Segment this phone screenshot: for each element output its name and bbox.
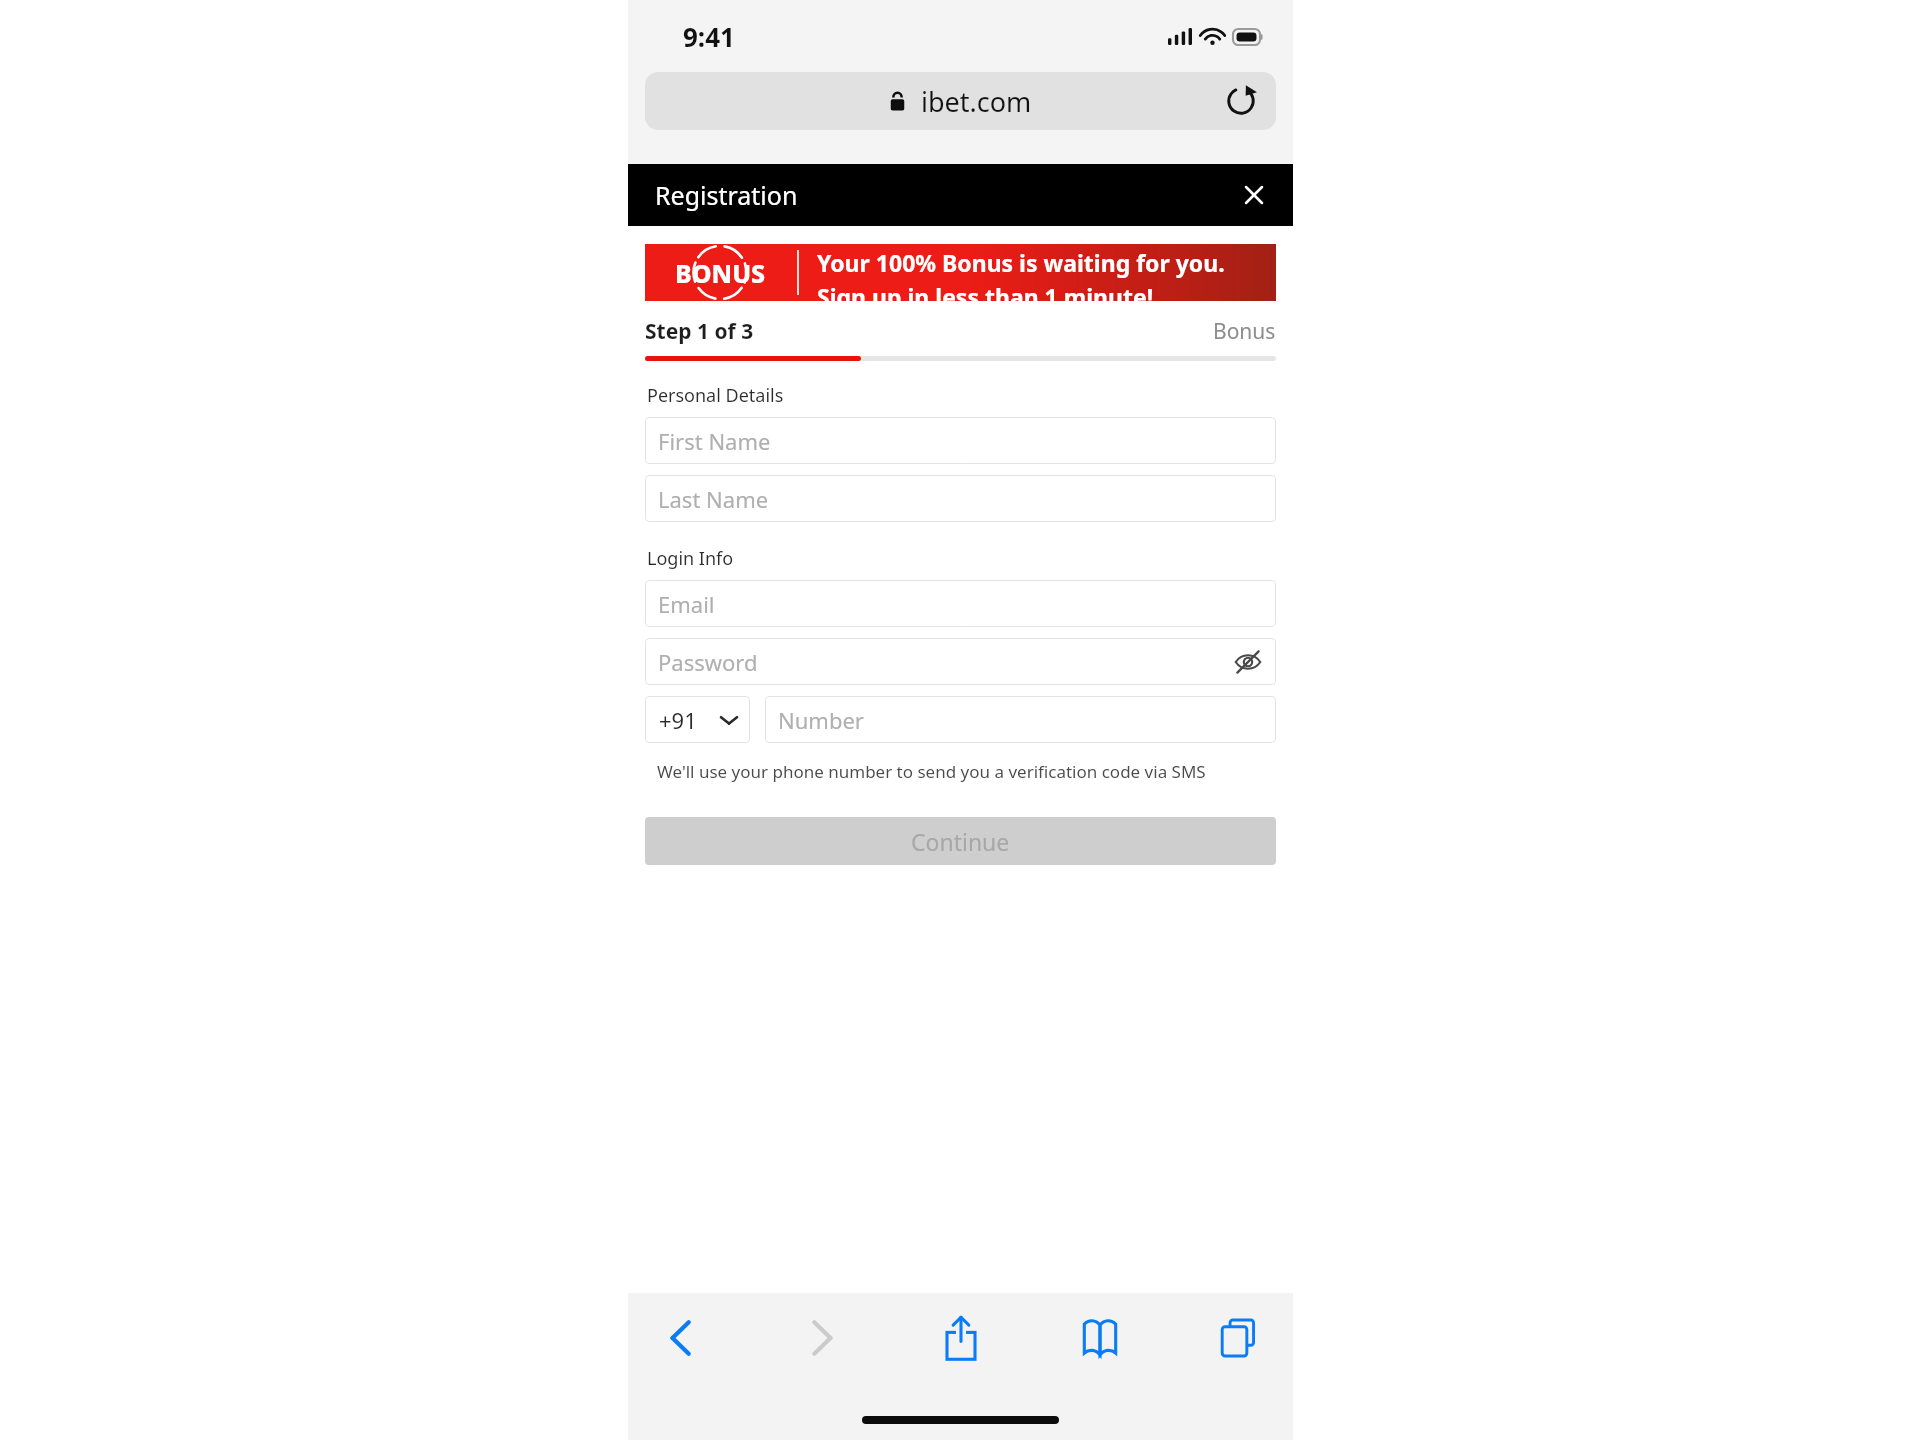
- button[interactable]: Last Name: [645, 475, 1276, 522]
- staticText: BONUS: [675, 256, 766, 290]
- button[interactable]: Email: [645, 580, 1276, 627]
- staticText: Your 100% Bonus is waiting for you.: [817, 247, 1225, 278]
- button[interactable]: Show password: [1234, 648, 1262, 676]
- button[interactable]: Bonus: [1213, 317, 1276, 346]
- staticText: ibet.com: [921, 83, 1032, 120]
- button[interactable]: Share: [933, 1310, 989, 1366]
- button[interactable]: Tabs: [1211, 1310, 1267, 1366]
- staticText: 9:41: [683, 19, 735, 54]
- button[interactable]: +91: [645, 696, 750, 743]
- staticText: Registration: [655, 178, 798, 212]
- staticText: Last Name: [658, 484, 769, 514]
- button[interactable]: BONUS: [645, 244, 1276, 301]
- staticText: Personal Details: [647, 383, 784, 408]
- staticText: +91: [659, 705, 697, 735]
- staticText: Login Info: [647, 546, 734, 571]
- staticText: Continue: [911, 826, 1010, 857]
- button[interactable]: Back: [654, 1310, 710, 1366]
- button[interactable]: Reload: [1224, 84, 1258, 118]
- button[interactable]: Forward: [793, 1310, 849, 1366]
- staticText: Password: [658, 647, 758, 677]
- button[interactable]: Bookmarks: [1072, 1310, 1128, 1366]
- button[interactable]: Number: [765, 696, 1276, 743]
- staticText: First Name: [658, 426, 771, 456]
- button[interactable]: ibet.com: [645, 72, 1276, 130]
- staticText: Sign up in less than 1 minute!: [817, 281, 1154, 301]
- button[interactable]: First Name: [645, 417, 1276, 464]
- staticText: We'll use your phone number to send you …: [657, 760, 1206, 783]
- button[interactable]: Close: [1235, 176, 1273, 214]
- staticText: Email: [658, 589, 715, 619]
- button[interactable]: Continue: [645, 817, 1276, 865]
- staticText: Number: [778, 705, 864, 735]
- staticText: Step 1 of 3: [645, 317, 754, 346]
- button[interactable]: Password: [645, 638, 1276, 685]
